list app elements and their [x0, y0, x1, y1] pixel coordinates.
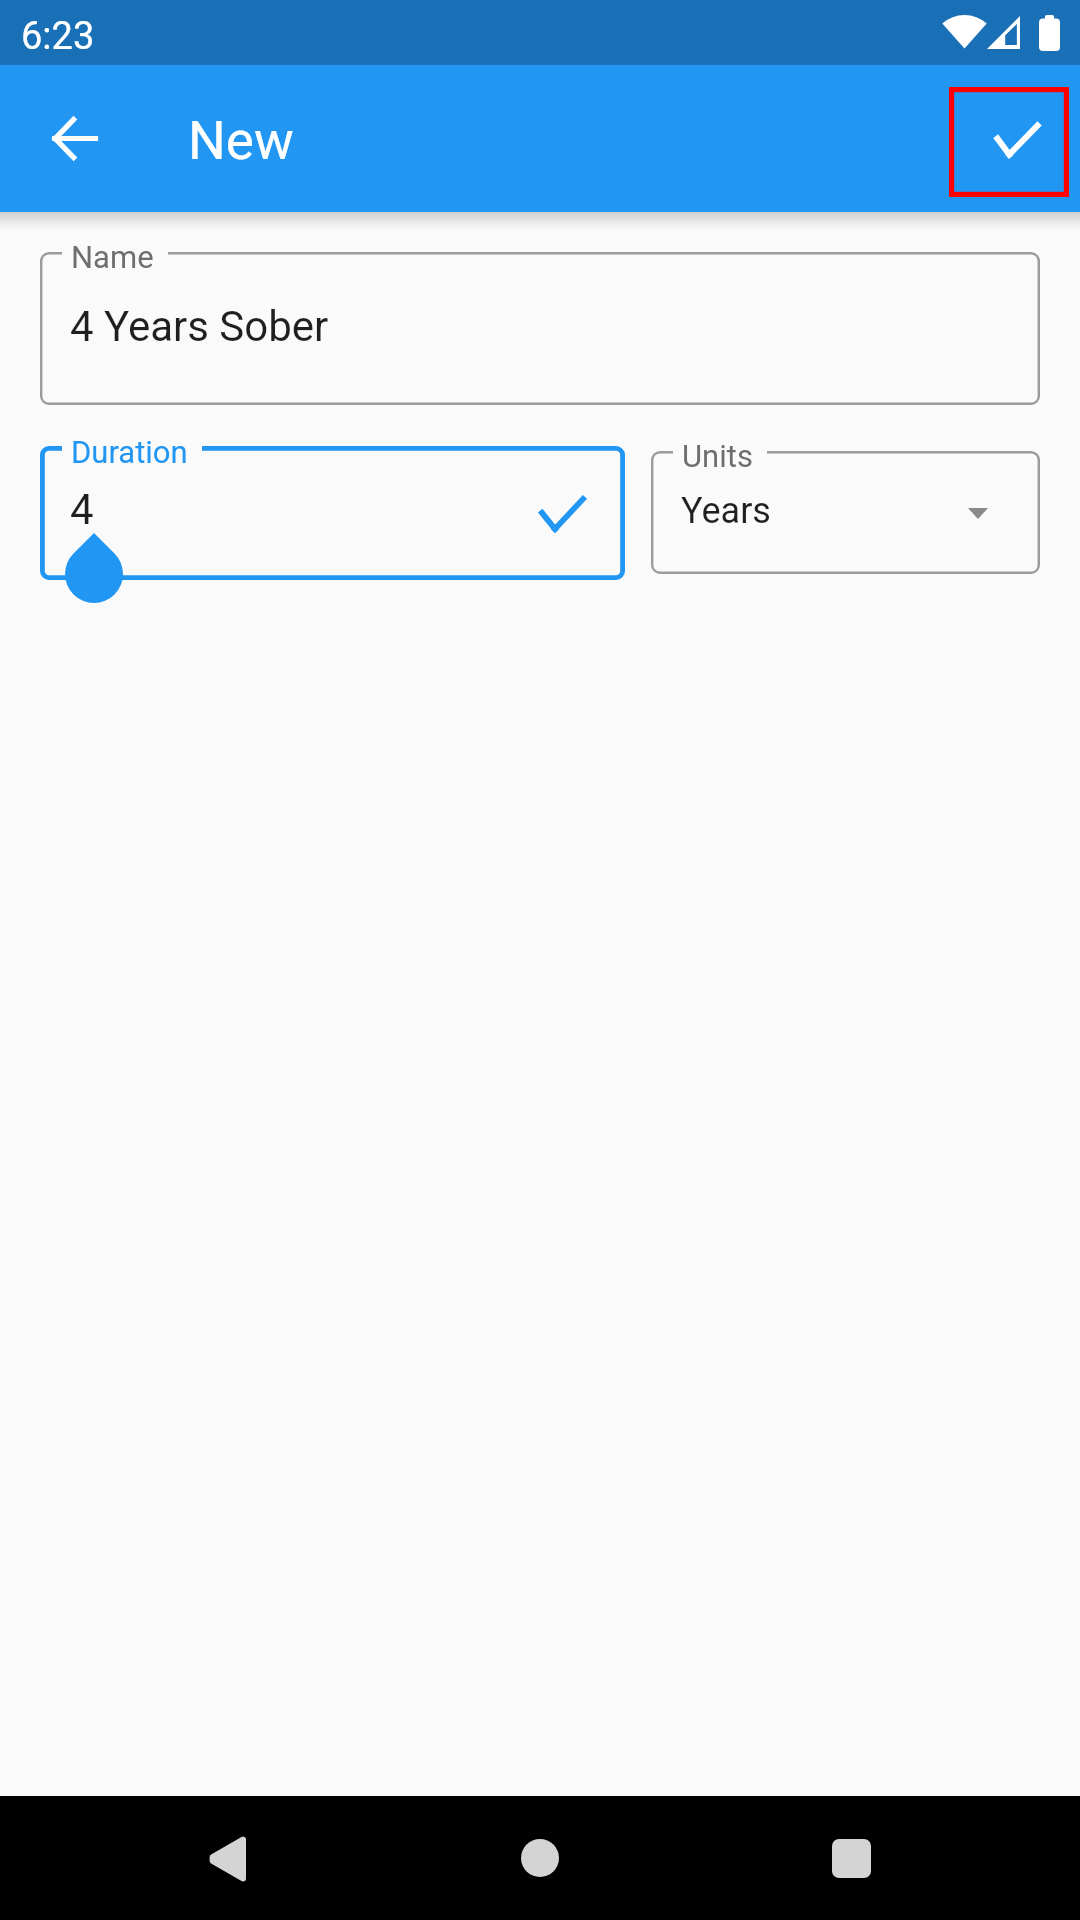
button[interactable]: Recent apps	[811, 1818, 891, 1898]
button[interactable]: Duration	[40, 446, 625, 580]
staticText: 4 Years Sober	[70, 302, 329, 351]
staticText: 6:23	[21, 14, 95, 59]
button[interactable]: Save	[949, 87, 1069, 197]
staticText: New	[188, 110, 294, 172]
button[interactable]: Units	[651, 451, 1040, 574]
staticText: Years	[681, 490, 771, 532]
staticText: Units	[682, 438, 753, 474]
button[interactable]: Back	[187, 1819, 267, 1899]
button[interactable]: Navigate up	[28, 93, 118, 183]
staticText: 4	[70, 485, 94, 534]
button[interactable]: Name	[40, 252, 1040, 405]
button[interactable]: Home	[500, 1818, 580, 1898]
staticText: Duration	[71, 434, 188, 470]
staticText: Name	[71, 239, 154, 275]
